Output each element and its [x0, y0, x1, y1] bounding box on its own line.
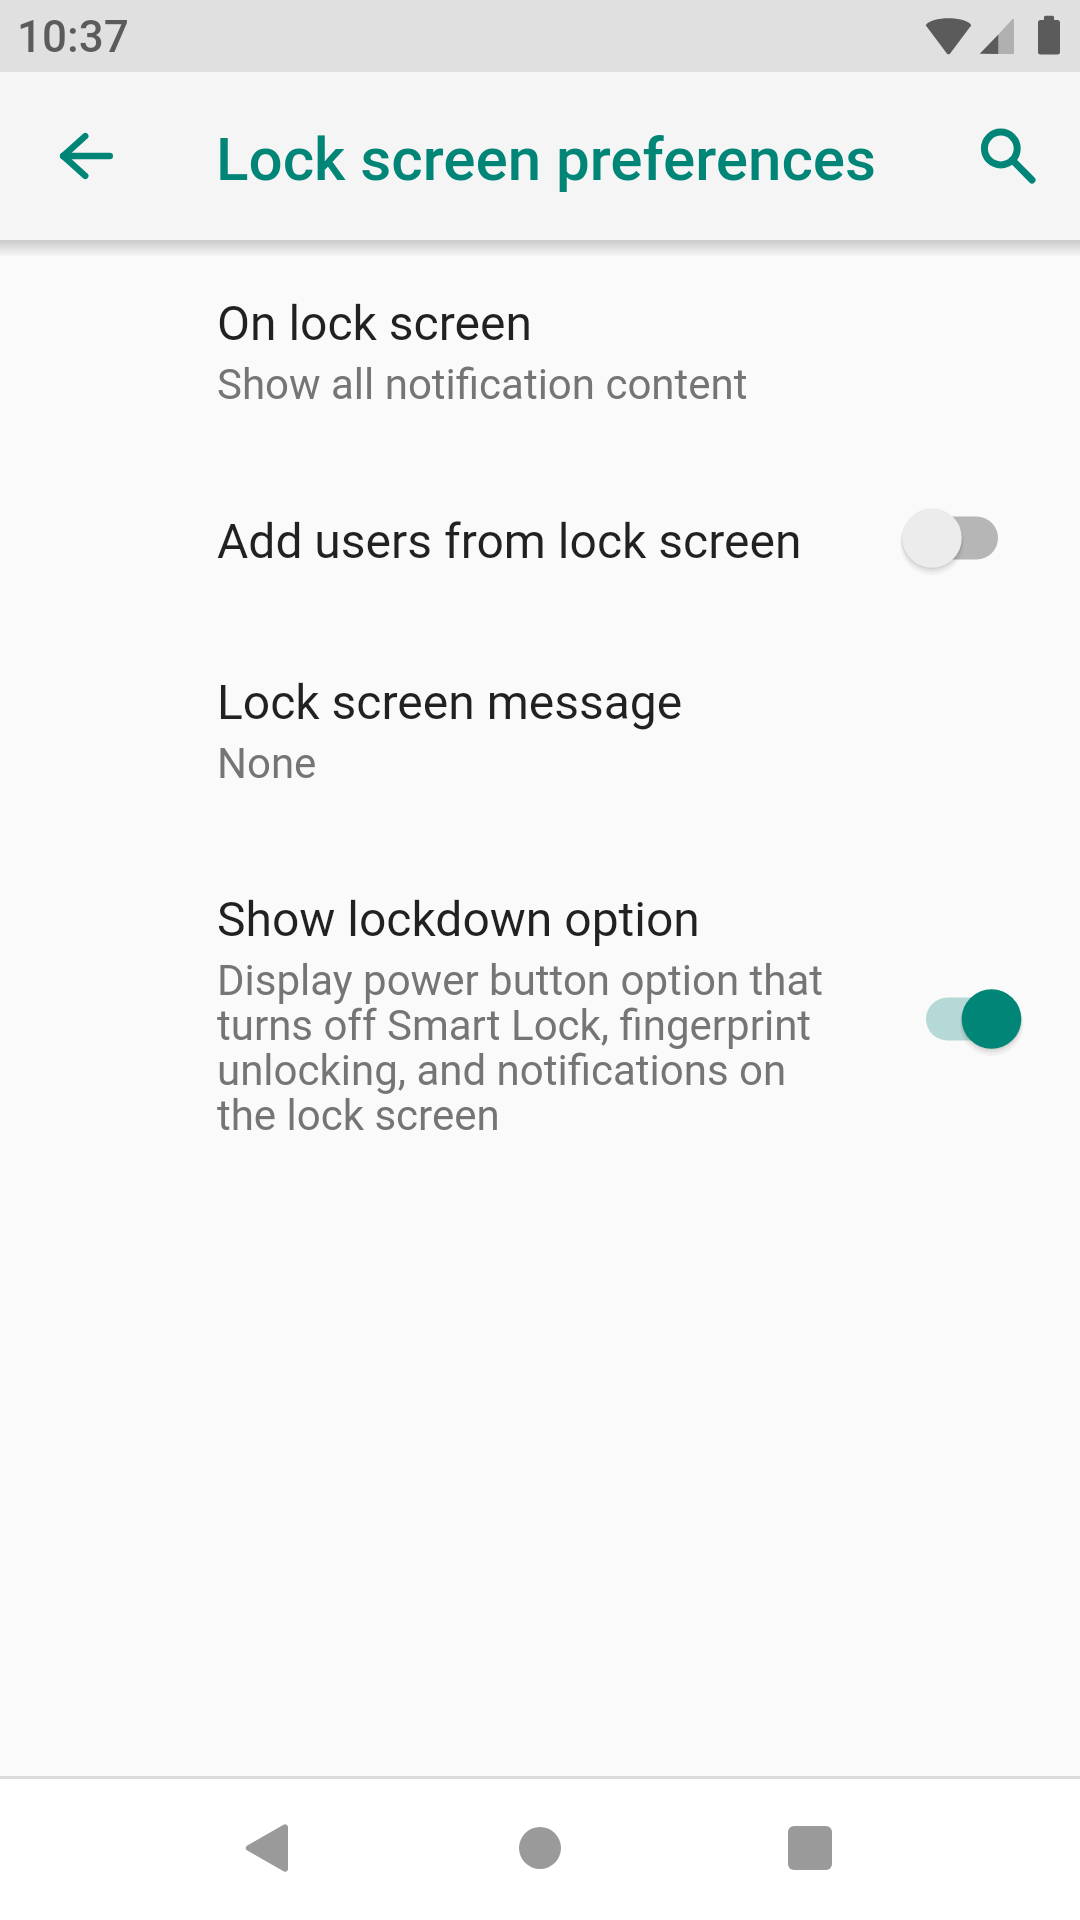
button[interactable] [0, 632, 1080, 822]
staticText: Display power button option that turns o… [217, 959, 847, 1139]
button[interactable]: Home [480, 1788, 600, 1908]
staticText: On lock screen [217, 296, 532, 352]
button[interactable] [0, 258, 1080, 444]
staticText: 10:37 [17, 11, 129, 63]
staticText: Lock screen message [217, 675, 683, 731]
staticText: Add users from lock screen [217, 514, 802, 570]
staticText: None [217, 742, 847, 787]
staticText: Show lockdown option [217, 892, 700, 948]
staticText: Show all notification content [217, 363, 847, 408]
button[interactable]: Back [206, 1788, 326, 1908]
button[interactable]: Off [892, 490, 1032, 586]
button[interactable]: Search [948, 128, 1060, 192]
button[interactable] [0, 822, 1080, 1148]
staticText: Lock screen preferences [216, 124, 877, 194]
button[interactable]: On [892, 971, 1032, 1067]
button[interactable]: Navigate up [30, 100, 142, 212]
button[interactable]: Recent apps [750, 1788, 870, 1908]
button[interactable] [0, 444, 1080, 632]
